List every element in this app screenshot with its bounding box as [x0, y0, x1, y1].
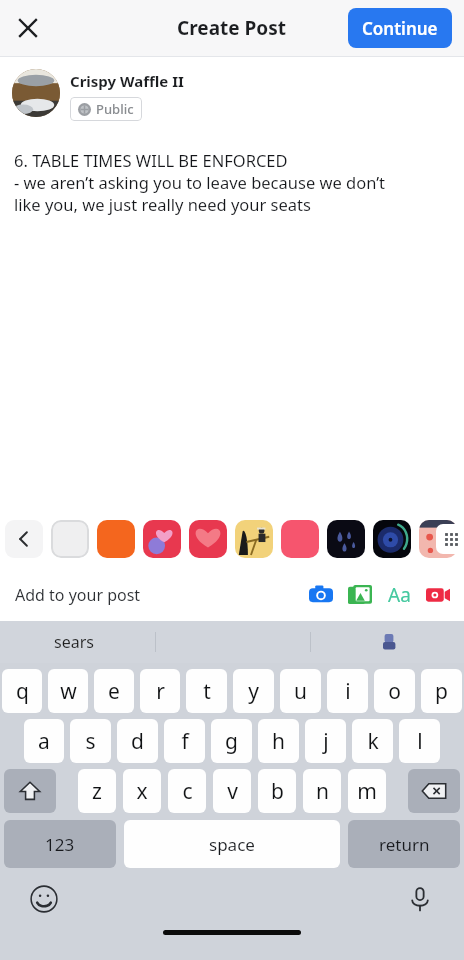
button[interactable]: space: [124, 820, 340, 868]
staticText: z: [92, 777, 102, 806]
button[interactable]: Sticker: [327, 520, 365, 558]
button[interactable]: Emoji suggestion: [375, 628, 403, 656]
button[interactable]: i: [327, 669, 368, 713]
staticText: Aa: [388, 582, 411, 608]
staticText: u: [294, 677, 307, 706]
staticText: space: [209, 833, 255, 856]
button[interactable]: s: [70, 719, 111, 763]
staticText: h: [272, 727, 285, 756]
staticText: e: [108, 677, 120, 706]
button[interactable]: Close: [6, 6, 50, 50]
button[interactable]: w: [48, 669, 88, 713]
button[interactable]: k: [352, 719, 393, 763]
button[interactable]: Continue: [348, 8, 452, 48]
button[interactable]: o: [374, 669, 415, 713]
staticText: i: [345, 677, 351, 706]
button[interactable]: Sticker: [419, 520, 457, 558]
staticText: y: [248, 677, 259, 706]
button[interactable]: x: [123, 769, 161, 813]
button[interactable]: Photo: [346, 581, 374, 609]
button[interactable]: e: [94, 669, 134, 713]
button[interactable]: Back: [5, 520, 43, 558]
button[interactable]: Crispy Waffle II: [70, 71, 184, 91]
button[interactable]: y: [233, 669, 274, 713]
staticText: c: [182, 777, 193, 806]
staticText: k: [367, 727, 379, 756]
button[interactable]: n: [303, 769, 341, 813]
button[interactable]: Text style: [385, 581, 413, 609]
staticText: o: [388, 677, 401, 706]
staticText: t: [203, 677, 211, 706]
button[interactable]: Add to your post: [15, 584, 141, 606]
staticText: v: [227, 777, 238, 806]
button[interactable]: c: [168, 769, 206, 813]
button[interactable]: g: [211, 719, 252, 763]
button[interactable]: u: [280, 669, 321, 713]
staticText: w: [60, 677, 77, 706]
button[interactable]: Sticker: [373, 520, 411, 558]
button[interactable]: l: [399, 719, 440, 763]
staticText: Continue: [362, 17, 438, 40]
staticText: f: [181, 727, 189, 756]
staticText: g: [225, 727, 238, 756]
staticText: q: [16, 677, 29, 706]
button[interactable]: Profile photo: [12, 69, 60, 117]
button[interactable]: No sticker: [51, 520, 89, 558]
staticText: a: [38, 727, 50, 756]
staticText: return: [379, 833, 430, 856]
staticText: s: [85, 727, 96, 756]
button[interactable]: Emoji keyboard: [24, 879, 64, 919]
button[interactable]: Sticker: [235, 520, 273, 558]
staticText: 6. TABLE TIMES WILL BE ENFORCED: [14, 149, 288, 171]
button[interactable]: m: [348, 769, 386, 813]
button[interactable]: Live video: [424, 581, 452, 609]
button[interactable]: a: [24, 719, 64, 763]
button[interactable]: Public: [70, 97, 142, 121]
button[interactable]: q: [2, 669, 42, 713]
button[interactable]: Sticker: [189, 520, 227, 558]
staticText: p: [435, 677, 448, 706]
button[interactable]: Sticker: [281, 520, 319, 558]
button[interactable]: return: [348, 820, 460, 868]
staticText: x: [136, 777, 148, 806]
button[interactable]: Backspace: [408, 769, 460, 813]
button[interactable]: f: [164, 719, 205, 763]
button[interactable]: r: [140, 669, 180, 713]
button[interactable]: Sticker: [97, 520, 135, 558]
button[interactable]: Sticker: [143, 520, 181, 558]
button[interactable]: v: [213, 769, 251, 813]
button[interactable]: z: [78, 769, 116, 813]
button[interactable]: All stickers: [436, 524, 464, 554]
staticText: 123: [45, 833, 75, 856]
button[interactable]: Camera: [307, 581, 335, 609]
staticText: n: [316, 777, 329, 806]
staticText: j: [323, 727, 329, 756]
button[interactable]: h: [258, 719, 299, 763]
staticText: d: [131, 727, 144, 756]
staticText: - we aren’t asking you to leave because …: [14, 171, 386, 193]
button[interactable]: b: [258, 769, 296, 813]
button[interactable]: 123: [4, 820, 116, 868]
staticText: r: [156, 677, 165, 706]
staticText: Create Post: [177, 15, 287, 41]
staticText: l: [417, 727, 423, 756]
button[interactable]: sears: [54, 631, 94, 653]
button[interactable]: Shift: [4, 769, 56, 813]
button[interactable]: j: [305, 719, 346, 763]
staticText: m: [357, 777, 377, 806]
button[interactable]: d: [117, 719, 158, 763]
button[interactable]: t: [186, 669, 227, 713]
button[interactable]: p: [421, 669, 462, 713]
button[interactable]: Voice input: [400, 879, 440, 919]
staticText: Public: [96, 100, 134, 118]
staticText: like you, we just really need your seats: [14, 193, 311, 215]
staticText: b: [271, 777, 284, 806]
